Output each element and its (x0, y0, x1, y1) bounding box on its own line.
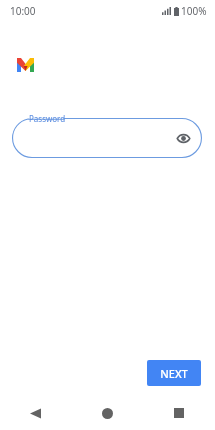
staticText: NEXT (160, 366, 188, 381)
button[interactable]: Home (71, 396, 143, 430)
staticText: Password (29, 113, 66, 124)
button[interactable]: Show password (173, 128, 193, 148)
staticText: 100% (181, 4, 207, 18)
staticText: 10:00 (10, 4, 36, 18)
button[interactable]: Recent apps (143, 396, 215, 430)
button[interactable]: Back (0, 396, 71, 430)
button[interactable]: NEXT (147, 360, 201, 386)
button[interactable]: Password (12, 118, 202, 158)
